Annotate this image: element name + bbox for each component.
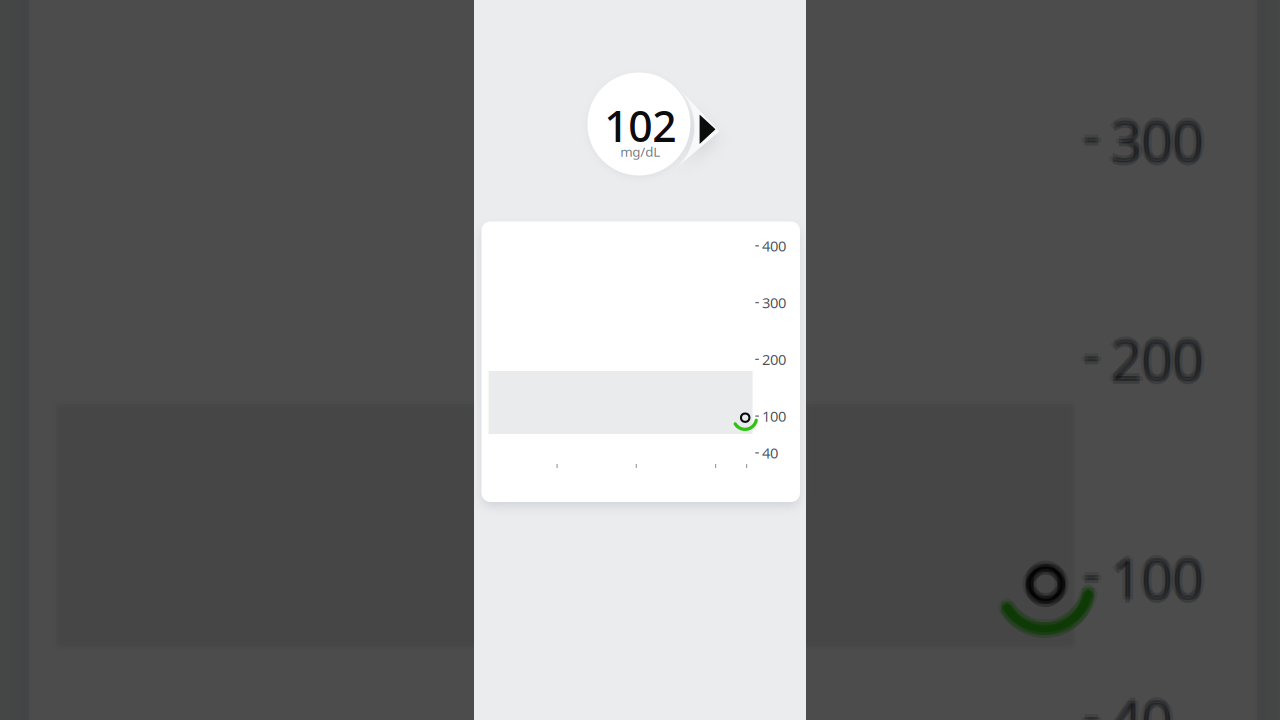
staticText: 102 (604, 97, 676, 154)
staticText: 100 (762, 406, 786, 426)
staticText: mg/dL (620, 143, 660, 160)
button[interactable]: Glucose trend chart (481, 221, 800, 502)
button[interactable]: Current glucose 102 mg/dL, steady (584, 72, 719, 182)
staticText: 40 (762, 443, 778, 463)
staticText: 200 (762, 350, 786, 369)
staticText: 400 (762, 236, 786, 256)
staticText: 300 (762, 293, 786, 312)
